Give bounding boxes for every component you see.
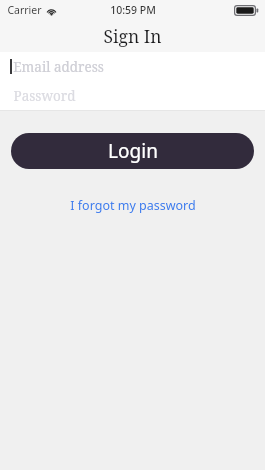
staticText: 10:59 PM [110, 3, 156, 17]
button[interactable]: I forgot my password [0, 194, 265, 216]
other: Wi-Fi signal [46, 5, 57, 16]
button[interactable]: Login [11, 133, 254, 169]
staticText: Carrier [7, 3, 42, 17]
button[interactable]: Password [0, 81, 265, 110]
staticText: Sign In [103, 24, 162, 48]
staticText: Email address [13, 58, 104, 76]
staticText: Login [108, 138, 158, 164]
staticText: Password [13, 87, 76, 105]
staticText: I forgot my password [70, 197, 196, 214]
button[interactable]: Email address [0, 52, 265, 81]
other: Battery full [234, 5, 259, 16]
